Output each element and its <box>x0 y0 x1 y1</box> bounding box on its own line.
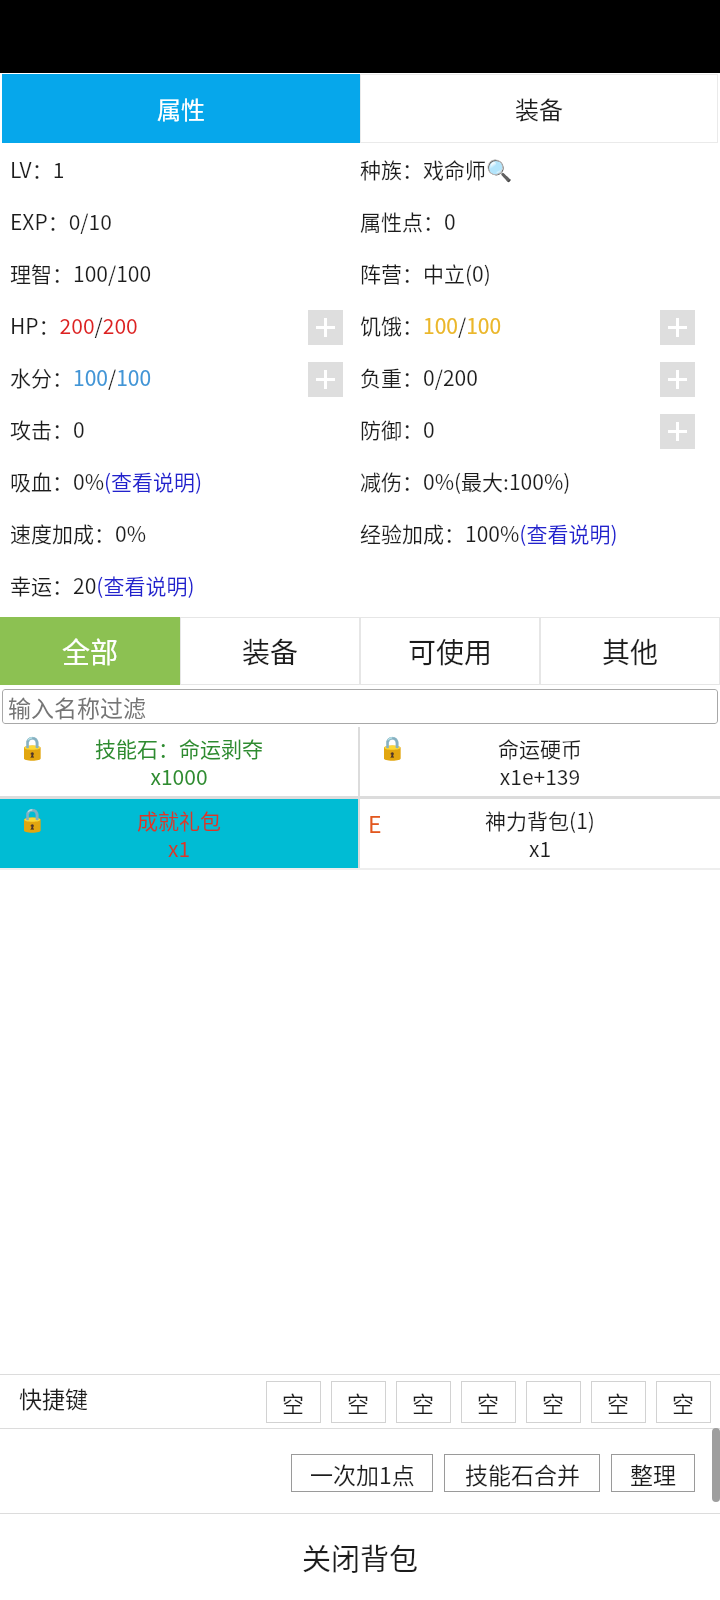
staticText: 空 <box>607 1386 630 1418</box>
staticText: EXP：0/10 <box>10 206 112 236</box>
staticText: 理智：100/100 <box>10 258 152 288</box>
staticText: 吸血：0%(查看说明) <box>10 466 203 496</box>
staticText: 属性 <box>157 91 205 126</box>
staticText: 关闭背包 <box>302 1536 419 1578</box>
staticText: 空 <box>477 1386 500 1418</box>
staticText: 空 <box>672 1386 695 1418</box>
staticText: 🔒 <box>378 735 407 762</box>
button[interactable]: 空 <box>656 1381 711 1423</box>
button[interactable]: Increase <box>660 362 695 397</box>
staticText: 空 <box>347 1386 370 1418</box>
button[interactable]: 🔒 <box>360 727 720 796</box>
staticText: 速度加成：0% <box>10 518 146 548</box>
button[interactable]: 其他 <box>540 617 720 685</box>
button[interactable]: E <box>360 799 720 868</box>
staticText: LV：1 <box>10 154 65 184</box>
staticText: 饥饿：100/100 <box>360 310 502 340</box>
staticText: 阵营：中立(0) <box>360 258 491 288</box>
button[interactable]: 关闭背包 <box>0 1514 720 1600</box>
staticText: 经验加成：100%(查看说明) <box>360 518 618 548</box>
button[interactable]: 属性 <box>2 74 360 143</box>
staticText: 整理 <box>630 1457 676 1490</box>
staticText: 全部 <box>62 631 119 672</box>
staticText: 装备 <box>515 91 563 126</box>
button[interactable]: 空 <box>396 1381 451 1423</box>
button[interactable]: Increase <box>660 310 695 345</box>
button[interactable]: Increase <box>660 414 695 449</box>
button[interactable]: Increase <box>308 362 343 397</box>
staticText: 防御：0 <box>360 414 435 444</box>
staticText: 减伤：0%(最大:100%) <box>360 466 571 496</box>
button[interactable]: 一次加1点 <box>291 1454 433 1492</box>
staticText: 负重：0/200 <box>360 362 478 392</box>
button[interactable]: 空 <box>266 1381 321 1423</box>
button[interactable]: 空 <box>331 1381 386 1423</box>
button[interactable]: 全部 <box>0 617 180 685</box>
button[interactable]: 空 <box>461 1381 516 1423</box>
staticText: 成就礼包 x1 <box>137 805 221 863</box>
button[interactable]: 装备 <box>360 74 718 143</box>
staticText: E <box>368 806 382 839</box>
staticText: 🔒 <box>18 807 47 834</box>
staticText: 输入名称过滤 <box>8 690 146 723</box>
button[interactable]: 🔒 <box>0 727 358 796</box>
button[interactable]: 输入名称过滤 <box>2 689 718 724</box>
staticText: 装备 <box>242 631 299 672</box>
staticText: 攻击：0 <box>10 414 85 444</box>
staticText: 空 <box>282 1386 305 1418</box>
button[interactable]: 🔒 <box>0 799 358 868</box>
button[interactable]: 技能石合并 <box>444 1454 600 1492</box>
button[interactable]: 空 <box>591 1381 646 1423</box>
staticText: 神力背包(1) x1 <box>485 805 595 863</box>
staticText: HP：200/200 <box>10 310 138 340</box>
button[interactable]: 可使用 <box>360 617 540 685</box>
button[interactable]: 空 <box>526 1381 581 1423</box>
staticText: 空 <box>412 1386 435 1418</box>
staticText: 可使用 <box>408 631 493 672</box>
staticText: 其他 <box>602 631 659 672</box>
staticText: 属性点：0 <box>360 206 456 236</box>
button[interactable]: 整理 <box>611 1454 695 1492</box>
staticText: 命运硬币 x1e+139 <box>498 733 582 791</box>
staticText: 空 <box>542 1386 565 1418</box>
staticText: 🔒 <box>18 735 47 762</box>
staticText: 快捷键 <box>19 1381 88 1414</box>
staticText: 技能石：命运剥夺 x1000 <box>95 733 263 791</box>
button[interactable]: 装备 <box>180 617 360 685</box>
staticText: 技能石合并 <box>465 1457 580 1490</box>
staticText: 幸运：20(查看说明) <box>10 570 195 600</box>
staticText: 种族：戏命师🔍 <box>360 154 513 184</box>
staticText: 一次加1点 <box>310 1457 415 1490</box>
button[interactable]: Increase <box>308 310 343 345</box>
staticText: 水分：100/100 <box>10 362 152 392</box>
